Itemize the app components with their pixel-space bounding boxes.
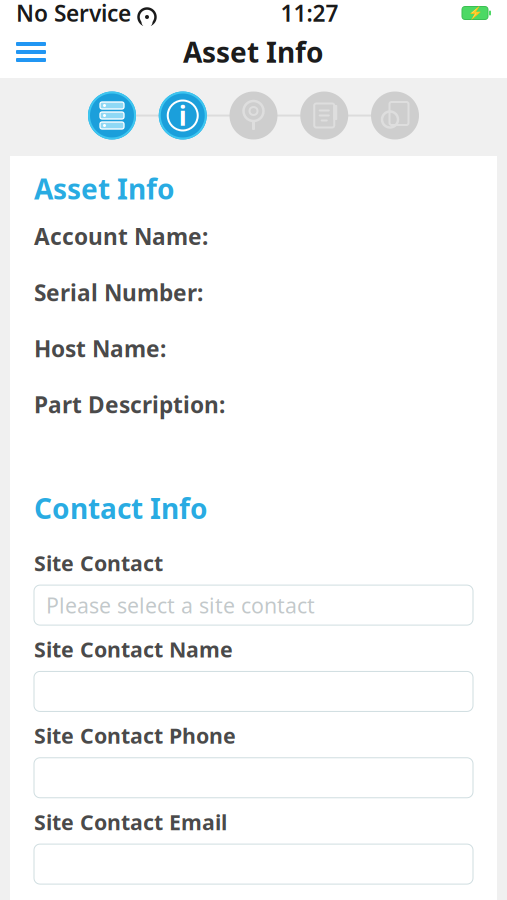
button[interactable]: Step xyxy=(298,89,350,141)
staticText: Site Contact Name xyxy=(34,635,233,663)
staticText: No Service xyxy=(16,0,131,28)
staticText: Site Contact Phone xyxy=(34,721,236,750)
button[interactable]: Step xyxy=(157,89,209,141)
staticText: ⚡ xyxy=(467,6,482,20)
staticText: Asset Info xyxy=(183,33,324,71)
button[interactable]: Text field xyxy=(34,671,473,711)
staticText: Host Name: xyxy=(34,333,166,363)
button[interactable]: Please select a site contact xyxy=(34,585,473,625)
button[interactable]: Step xyxy=(369,89,421,141)
button[interactable]: Menu xyxy=(0,30,62,74)
staticText: Part Description: xyxy=(34,389,225,420)
button[interactable]: Text field xyxy=(34,844,473,884)
staticText: Site Contact xyxy=(34,549,163,577)
staticText: Contact Info xyxy=(34,490,208,527)
staticText: i xyxy=(179,98,187,133)
button[interactable]: Text field xyxy=(34,758,473,798)
staticText: Please select a site contact xyxy=(46,591,315,619)
staticText: Asset Info xyxy=(34,170,175,207)
staticText: Account Name: xyxy=(34,221,208,251)
staticText: Serial Number: xyxy=(34,277,203,307)
staticText: 11:27 xyxy=(280,0,338,28)
staticText: Site Contact Email xyxy=(34,808,227,836)
button[interactable]: Step xyxy=(227,89,279,141)
button[interactable]: Step xyxy=(86,89,138,141)
